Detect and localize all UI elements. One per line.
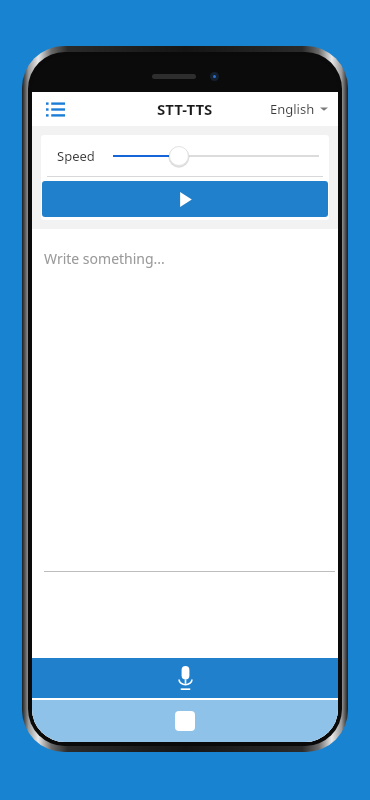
- button[interactable]: Speed slider: [113, 141, 319, 171]
- button[interactable]: Play: [42, 181, 328, 217]
- staticText: English: [270, 100, 315, 118]
- staticText: Write something...: [44, 249, 165, 268]
- button[interactable]: Menu: [40, 94, 70, 124]
- button[interactable]: Write something...: [32, 229, 338, 658]
- button[interactable]: Stop: [32, 700, 338, 742]
- staticText: STT-TTS: [157, 99, 213, 119]
- button[interactable]: Record with microphone: [32, 658, 338, 698]
- button[interactable]: English: [266, 96, 332, 122]
- staticText: Speed: [57, 147, 95, 165]
